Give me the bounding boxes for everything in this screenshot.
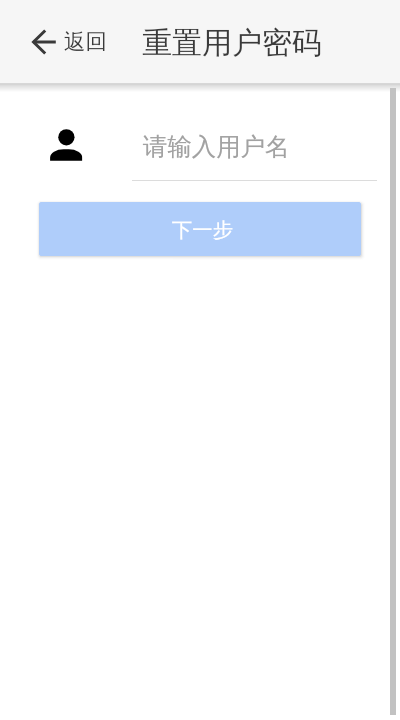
staticText: 返回 bbox=[64, 28, 107, 55]
button[interactable]: 请输入用户名 bbox=[132, 116, 377, 179]
other: 返回 bbox=[32, 30, 56, 54]
staticText: 重置用户密码 bbox=[142, 24, 322, 62]
staticText: 下一步 bbox=[172, 217, 233, 243]
staticText: 请输入用户名 bbox=[143, 132, 290, 163]
button[interactable]: 下一步 bbox=[39, 202, 361, 256]
button[interactable]: 返回 bbox=[32, 28, 107, 55]
